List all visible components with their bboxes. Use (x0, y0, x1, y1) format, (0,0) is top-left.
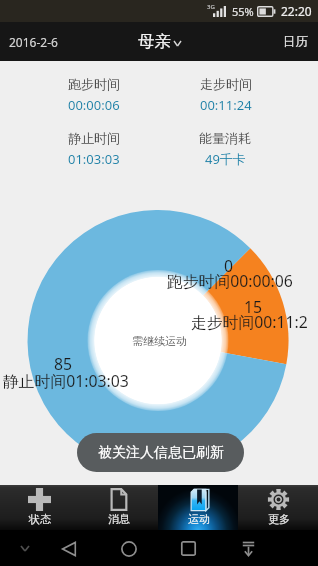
staticText: 能量消耗 (199, 130, 251, 146)
button[interactable]: Downloads (236, 536, 261, 561)
button[interactable]: 运动 (158, 485, 238, 530)
staticText: 01:03:03 (68, 150, 120, 168)
button[interactable]: Hide (12, 536, 37, 561)
staticText: 跑步时间00:00:06 (167, 270, 293, 292)
staticText: 状态 (29, 512, 51, 526)
staticText: 母亲 (138, 31, 171, 52)
staticText: 55% (232, 4, 254, 19)
button[interactable]: Recents (176, 536, 201, 561)
staticText: 0 (224, 255, 234, 277)
button[interactable]: 更多 (238, 485, 318, 530)
button[interactable]: 消息 (79, 485, 158, 530)
staticText: 85 (54, 353, 73, 375)
button[interactable]: 状态 (0, 485, 79, 530)
staticText: 日历 (283, 34, 308, 50)
staticText: 需继续运动 (132, 334, 187, 348)
staticText: 走步时间 (200, 76, 252, 92)
staticText: 更多 (268, 512, 290, 526)
staticText: 静止时间01:03:03 (3, 370, 129, 392)
button[interactable]: 日历 (275, 34, 318, 50)
staticText: 49千卡 (205, 150, 246, 168)
staticText: 00:11:24 (200, 96, 252, 114)
staticText: 跑步时间 (68, 76, 120, 92)
button[interactable]: Home (116, 536, 141, 561)
staticText: 被关注人信息已刷新 (98, 444, 224, 462)
staticText: 2016-2-6 (9, 34, 58, 50)
staticText: 静止时间 (68, 130, 120, 146)
staticText: 00:00:06 (68, 96, 120, 114)
staticText: 15 (244, 296, 263, 318)
staticText: 22:20 (281, 3, 312, 19)
button[interactable]: 2016-2-6 (0, 34, 66, 50)
button[interactable]: 母亲 (132, 31, 187, 52)
staticText: 运动 (188, 512, 210, 526)
staticText: 走步时间00:11:2 (191, 311, 308, 333)
staticText: 消息 (108, 512, 130, 526)
button[interactable]: Back (56, 536, 81, 561)
staticText: 3G (207, 3, 215, 11)
